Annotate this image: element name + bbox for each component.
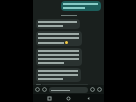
- button[interactable]: Recent apps: [46, 95, 53, 102]
- button[interactable]: Home: [65, 95, 72, 102]
- button[interactable]: Emoji: [35, 87, 40, 92]
- button[interactable]: [36, 48, 82, 66]
- button[interactable]: Attach: [42, 87, 47, 92]
- button[interactable]: [36, 19, 80, 29]
- button[interactable]: [36, 68, 81, 82]
- button[interactable]: [61, 1, 101, 11]
- button[interactable]: [36, 31, 82, 46]
- button[interactable]: Back: [85, 95, 92, 102]
- button[interactable]: [49, 87, 88, 93]
- button[interactable]: Camera: [90, 87, 95, 92]
- button[interactable]: Voice message: [97, 87, 102, 92]
